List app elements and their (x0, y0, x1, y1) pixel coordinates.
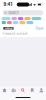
button[interactable] (32, 17, 41, 20)
button[interactable] (18, 17, 23, 20)
button[interactable] (19, 21, 25, 24)
button[interactable]: beach sunset (0, 32, 46, 35)
button[interactable] (11, 17, 17, 20)
staticText: beach sunset (6, 32, 28, 35)
button[interactable] (7, 21, 12, 24)
button[interactable] (2, 21, 6, 24)
button[interactable] (2, 17, 11, 20)
staticText: Search (8, 10, 19, 15)
button[interactable]: Profile (37, 85, 46, 95)
staticText: Recent (3, 26, 14, 31)
button[interactable] (24, 17, 31, 20)
button[interactable]: Home (0, 85, 9, 95)
staticText: Clear (35, 26, 43, 30)
button[interactable] (26, 21, 33, 24)
button[interactable] (13, 21, 18, 24)
button[interactable]: Clear (35, 26, 43, 30)
button[interactable]: Browse (9, 85, 18, 95)
button[interactable]: Search (18, 85, 28, 95)
staticText: 9:41 (3, 2, 12, 7)
button[interactable]: Search (3, 10, 43, 15)
button[interactable]: Saved (28, 85, 37, 95)
